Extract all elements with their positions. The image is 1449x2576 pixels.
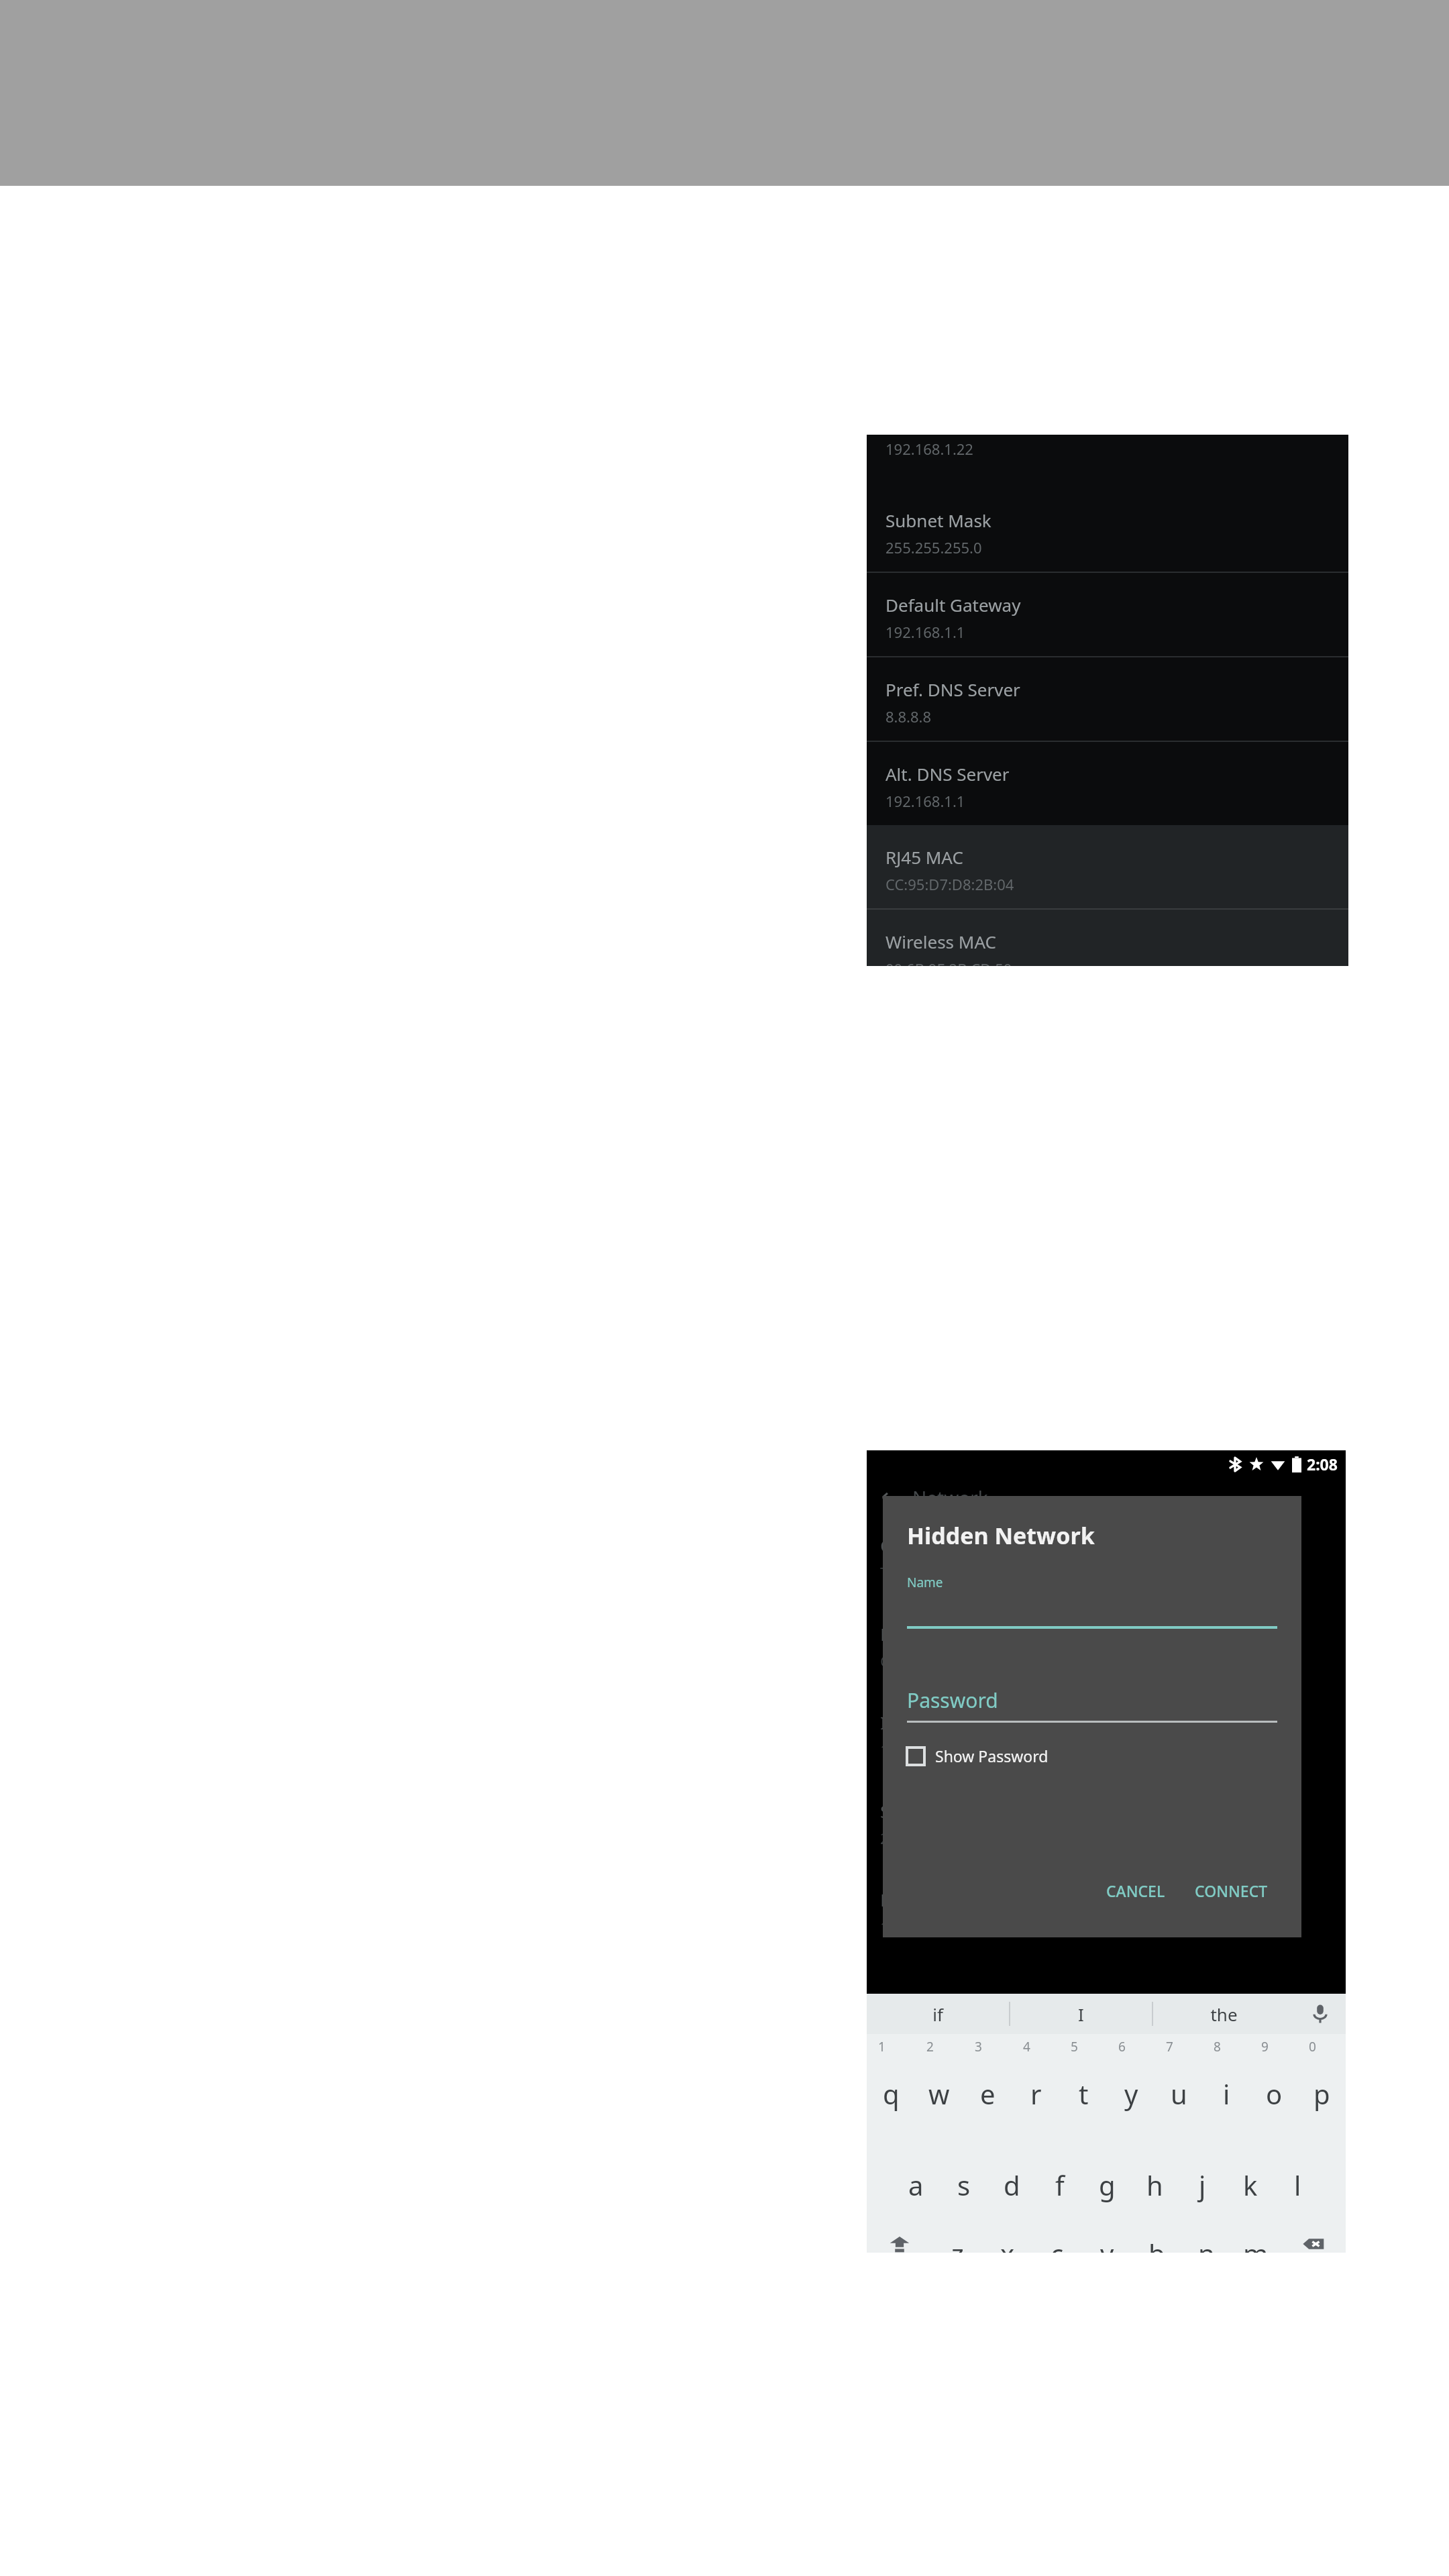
button[interactable]: DHCP [867, 1606, 1346, 1695]
button[interactable]: Default Gateway [867, 573, 1348, 656]
staticText: Two Wireless [880, 1562, 971, 1582]
button[interactable]: Backspace [1281, 2235, 1346, 2253]
button[interactable]: w [915, 2053, 963, 2135]
button[interactable]: Alt. DNS Server [867, 742, 1348, 825]
button[interactable]: e [963, 2053, 1012, 2135]
button[interactable]: x [983, 2235, 1032, 2253]
staticText: Pref. DNS Server [885, 678, 1020, 701]
button[interactable]: g [1083, 2135, 1131, 2235]
button[interactable]: Wireless MAC [867, 910, 1348, 966]
staticText: 7 [1166, 2038, 1173, 2055]
staticText: z [951, 2235, 964, 2253]
staticText: 3 [975, 2038, 982, 2055]
staticText: i [1223, 2076, 1230, 2112]
button[interactable]: t [1060, 2053, 1108, 2135]
button[interactable]: I [1010, 1994, 1152, 2034]
staticText: h [1146, 2167, 1163, 2203]
button[interactable]: if [867, 1994, 1009, 2034]
button[interactable]: c [1032, 2235, 1082, 2253]
button[interactable]: d [988, 2135, 1036, 2235]
staticText: 192.168.1.1 [885, 622, 965, 642]
staticText: l [1294, 2167, 1301, 2203]
staticText: y [1124, 2076, 1138, 2112]
button[interactable]: Shift [867, 2235, 932, 2253]
button[interactable]: CANCEL [1097, 1874, 1175, 1908]
staticText: Subnet Mask [880, 1799, 986, 1823]
button[interactable]: n [1181, 2235, 1231, 2253]
staticText: 2 [926, 2038, 934, 2055]
button[interactable]: Pref. DNS Server [867, 657, 1348, 741]
button[interactable]: Default Gateway [867, 1872, 1346, 1960]
button[interactable]: IP Address [867, 1695, 1346, 1783]
button[interactable]: q [867, 2053, 915, 2135]
button[interactable]: Back [867, 1477, 1346, 1517]
staticText: On [880, 1651, 901, 1671]
staticText: 4 [1023, 2038, 1030, 2055]
button[interactable]: m [1231, 2235, 1281, 2253]
staticText: q [883, 2076, 900, 2112]
staticText: the [1210, 2002, 1238, 2026]
staticText: 192.168.1.1 [880, 1917, 960, 1937]
staticText: r [1030, 2076, 1042, 2112]
button[interactable]: Connection Type [867, 1517, 1346, 1606]
button[interactable]: z [932, 2235, 983, 2253]
other: Back [880, 1489, 898, 1506]
button[interactable]: k [1226, 2135, 1274, 2235]
staticText: 8 [1214, 2038, 1221, 2055]
button[interactable]: Voice input [1295, 1994, 1346, 2034]
button[interactable]: Subnet Mask [867, 1783, 1346, 1872]
button[interactable]: CONNECT [1185, 1874, 1277, 1908]
staticText: v [1100, 2235, 1114, 2253]
staticText: j [1199, 2167, 1206, 2203]
staticText: s [957, 2167, 971, 2203]
staticText: Show Password [935, 1746, 1049, 1766]
staticText: 255.255.255.0 [880, 1828, 977, 1848]
button[interactable]: v [1082, 2235, 1132, 2253]
button[interactable]: u [1155, 2053, 1203, 2135]
button[interactable]: b [1132, 2235, 1181, 2253]
button[interactable]: j [1179, 2135, 1226, 2235]
button[interactable]: i [1203, 2053, 1250, 2135]
staticText: Default Gateway [885, 593, 1021, 616]
button[interactable]: o [1250, 2053, 1298, 2135]
staticText: Subnet Mask [885, 508, 991, 532]
staticText: Alt. DNS Server [885, 762, 1010, 786]
button[interactable]: y [1108, 2053, 1155, 2135]
button[interactable]: Subnet Mask [867, 488, 1348, 572]
staticText: CANCEL [1106, 1880, 1165, 1901]
button[interactable] [907, 1626, 1277, 1629]
staticText: I [1078, 2002, 1084, 2026]
staticText: x [1000, 2235, 1015, 2253]
staticText: o [1266, 2076, 1283, 2112]
staticText: CONNECT [1195, 1880, 1268, 1901]
staticText: n [1198, 2235, 1215, 2253]
button[interactable]: a [892, 2135, 940, 2235]
button[interactable]: f [1036, 2135, 1083, 2235]
staticText: u [1171, 2076, 1187, 2112]
staticText: Default Gateway [880, 1888, 1016, 1911]
staticText: if [932, 2002, 943, 2026]
staticText: m [1243, 2235, 1269, 2253]
staticText: 192.168.1.1 [885, 791, 965, 811]
button[interactable]: the [1153, 1994, 1295, 2034]
button[interactable]: p [1298, 2053, 1346, 2135]
staticText: 6 [1118, 2038, 1126, 2055]
button[interactable]: l [1274, 2135, 1322, 2235]
staticText: f [1055, 2167, 1065, 2203]
staticText: 00:6B:9E:2B:CD:50 [885, 959, 1012, 966]
staticText: CC:95:D7:D8:2B:04 [885, 874, 1014, 894]
button[interactable]: h [1131, 2135, 1179, 2235]
staticText: Hidden Network [907, 1520, 1095, 1551]
button[interactable]: Show Password [907, 1746, 1049, 1766]
staticText: 8.8.8.8 [885, 706, 932, 727]
button[interactable]: s [940, 2135, 988, 2235]
staticText: 255.255.255.0 [885, 537, 982, 557]
button[interactable]: r [1012, 2053, 1060, 2135]
staticText: e [980, 2076, 996, 2112]
staticText: Wireless MAC [885, 930, 996, 953]
button[interactable]: 192.168.1.22 [867, 435, 1348, 488]
staticText: 0 [1309, 2038, 1316, 2055]
staticText: p [1313, 2076, 1330, 2112]
button[interactable]: RJ45 MAC [867, 825, 1348, 908]
